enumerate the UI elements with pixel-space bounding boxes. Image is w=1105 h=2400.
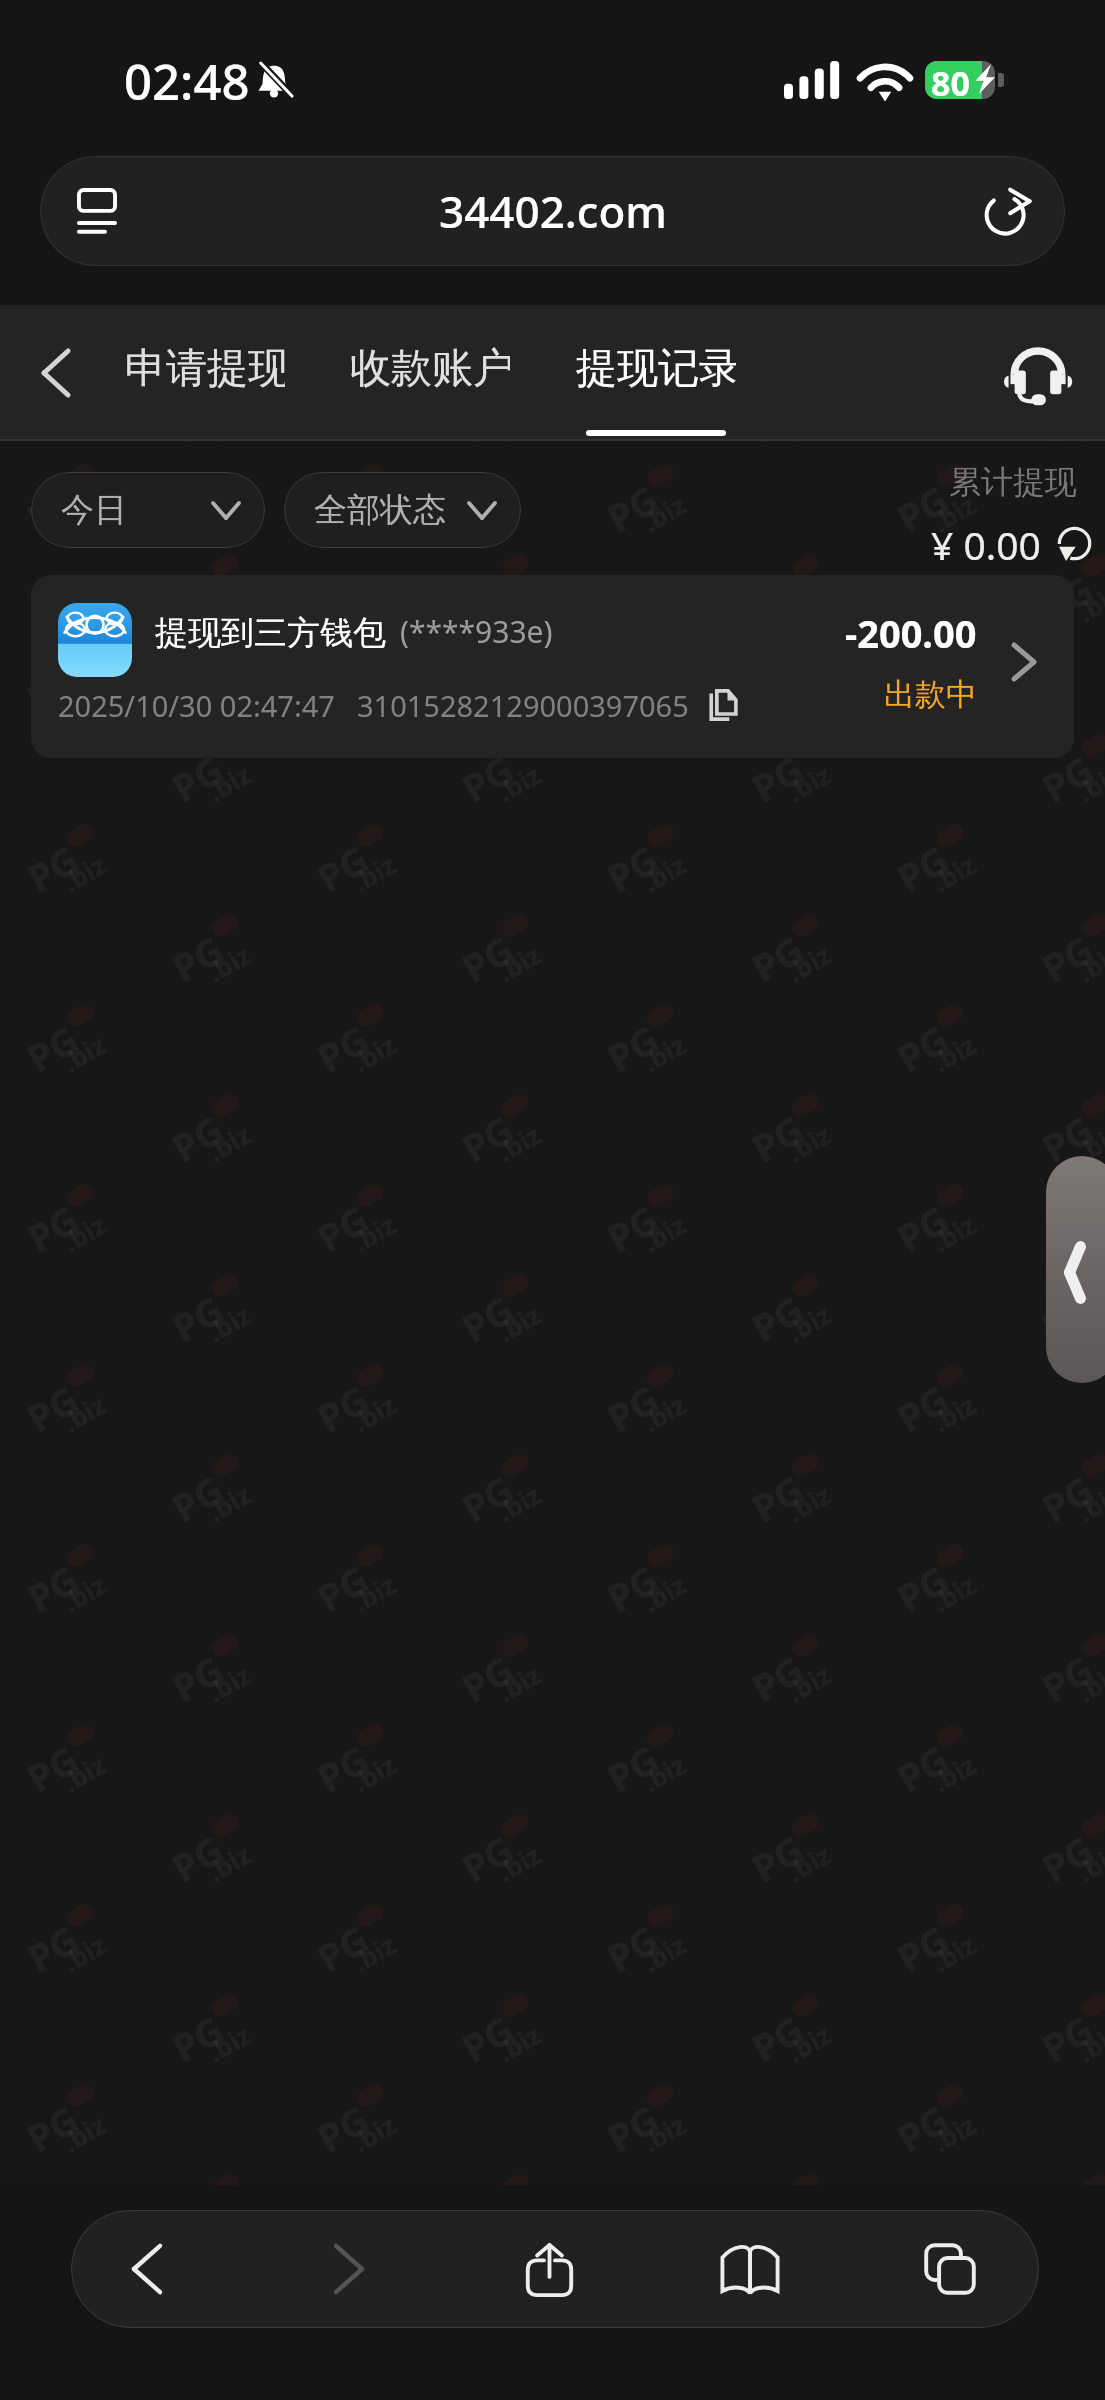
staticText: 累计提现 — [949, 462, 1077, 502]
staticText: .biz — [201, 1836, 257, 1889]
button[interactable]: Open side panel — [1046, 1156, 1105, 1383]
staticText: .biz — [56, 1206, 112, 1259]
staticText: PG — [162, 2182, 233, 2185]
staticText: .biz — [781, 1116, 837, 1169]
button[interactable]: 收款账户 — [350, 305, 510, 441]
button[interactable]: Bookmarks — [690, 2210, 810, 2328]
staticText: PG — [17, 1732, 88, 1803]
button[interactable]: 申请提现 — [125, 305, 285, 441]
staticText: PG — [162, 1642, 233, 1713]
staticText: PG — [597, 1912, 668, 1983]
button[interactable]: Reader view — [40, 156, 1065, 266]
staticText: PG — [1032, 2002, 1103, 2073]
button[interactable]: Reader view — [62, 176, 132, 246]
staticText: .biz — [346, 666, 402, 719]
button[interactable]: Back — [87, 2210, 207, 2328]
staticText: .biz — [491, 2016, 547, 2069]
staticText: 31015282129000397065 — [357, 686, 689, 725]
staticText: .biz — [56, 1566, 112, 1619]
staticText: PG — [742, 1642, 813, 1713]
staticText: PG — [742, 2002, 813, 2073]
staticText: PG — [17, 1012, 88, 1083]
staticText: PG — [452, 1822, 523, 1893]
staticText: PG — [1032, 382, 1103, 453]
staticText: .biz — [56, 1026, 112, 1079]
staticText: .biz — [636, 846, 692, 899]
staticText: PG — [597, 652, 668, 723]
staticText: PG — [307, 832, 378, 903]
button[interactable]: Forward — [289, 2210, 409, 2328]
staticText: .biz — [56, 1926, 112, 1979]
staticText: 2025/10/30 02:47:47 — [58, 686, 335, 725]
staticText: PG — [17, 1192, 88, 1263]
staticText: .biz — [346, 1746, 402, 1799]
staticText: PG — [17, 652, 88, 723]
staticText: PG — [597, 832, 668, 903]
staticText: PG — [742, 1282, 813, 1353]
staticText: PG — [17, 832, 88, 903]
staticText: PG — [307, 652, 378, 723]
staticText: .biz — [346, 846, 402, 899]
staticText: PG — [1032, 2182, 1103, 2185]
staticText: .biz — [491, 1476, 547, 1529]
staticText: .biz — [636, 2106, 692, 2159]
button[interactable]: Copy — [703, 685, 743, 725]
staticText: .biz — [346, 1386, 402, 1439]
staticText: .biz — [346, 1566, 402, 1619]
staticText: .biz — [1071, 1116, 1105, 1169]
staticText: (****933e) — [400, 611, 553, 652]
staticText: .biz — [926, 1566, 982, 1619]
button[interactable]: 今日 — [31, 472, 265, 548]
staticText: PG — [1032, 1462, 1103, 1533]
staticText: .biz — [491, 1116, 547, 1169]
staticText: .biz — [491, 936, 547, 989]
staticText: .biz — [201, 756, 257, 809]
staticText: PG — [1032, 1102, 1103, 1173]
staticText: .biz — [781, 936, 837, 989]
button[interactable]: Tabs — [890, 2210, 1010, 2328]
staticText: PG — [887, 2092, 958, 2163]
staticText: PG — [452, 1102, 523, 1173]
staticText: PG — [17, 1912, 88, 1983]
staticText: PG — [452, 742, 523, 813]
staticText: .biz — [201, 936, 257, 989]
button[interactable]: Share — [489, 2210, 609, 2328]
button[interactable]: 提现记录 — [576, 305, 736, 441]
staticText: 提现记录 — [576, 343, 736, 395]
staticText: .biz — [781, 1476, 837, 1529]
button[interactable]: Reload — [973, 176, 1043, 246]
staticText: ¥ 0.00 — [931, 518, 1041, 571]
staticText: PG — [1032, 1822, 1103, 1893]
button[interactable]: 提现到三方钱包 — [31, 575, 1074, 758]
staticText: 出款中 — [884, 675, 977, 714]
button[interactable]: Customer service — [993, 323, 1083, 423]
staticText: .biz — [926, 1386, 982, 1439]
staticText: .biz — [491, 1296, 547, 1349]
staticText: .biz — [201, 1476, 257, 1529]
button[interactable]: 全部状态 — [284, 472, 521, 548]
staticText: PG — [1032, 742, 1103, 813]
staticText: .biz — [491, 1836, 547, 1889]
staticText: .biz — [636, 1206, 692, 1259]
staticText: PG — [597, 1552, 668, 1623]
staticText: .biz — [346, 1026, 402, 1079]
staticText: PG — [162, 562, 233, 633]
staticText: PG — [17, 1552, 88, 1623]
staticText: PG — [452, 922, 523, 993]
staticText: .biz — [636, 1926, 692, 1979]
button[interactable]: Refresh — [1053, 525, 1093, 565]
staticText: .biz — [636, 1746, 692, 1799]
staticText: .biz — [926, 1026, 982, 1079]
staticText: PG — [597, 1192, 668, 1263]
staticText: PG — [162, 1102, 233, 1173]
staticText: PG — [1032, 1642, 1103, 1713]
staticText: PG — [742, 1822, 813, 1893]
staticText: .biz — [1071, 756, 1105, 809]
staticText: .biz — [926, 2106, 982, 2159]
button[interactable]: Back — [18, 323, 94, 423]
staticText: .biz — [491, 756, 547, 809]
staticText: PG — [307, 2092, 378, 2163]
staticText: .biz — [636, 1566, 692, 1619]
staticText: .biz — [1071, 1836, 1105, 1889]
